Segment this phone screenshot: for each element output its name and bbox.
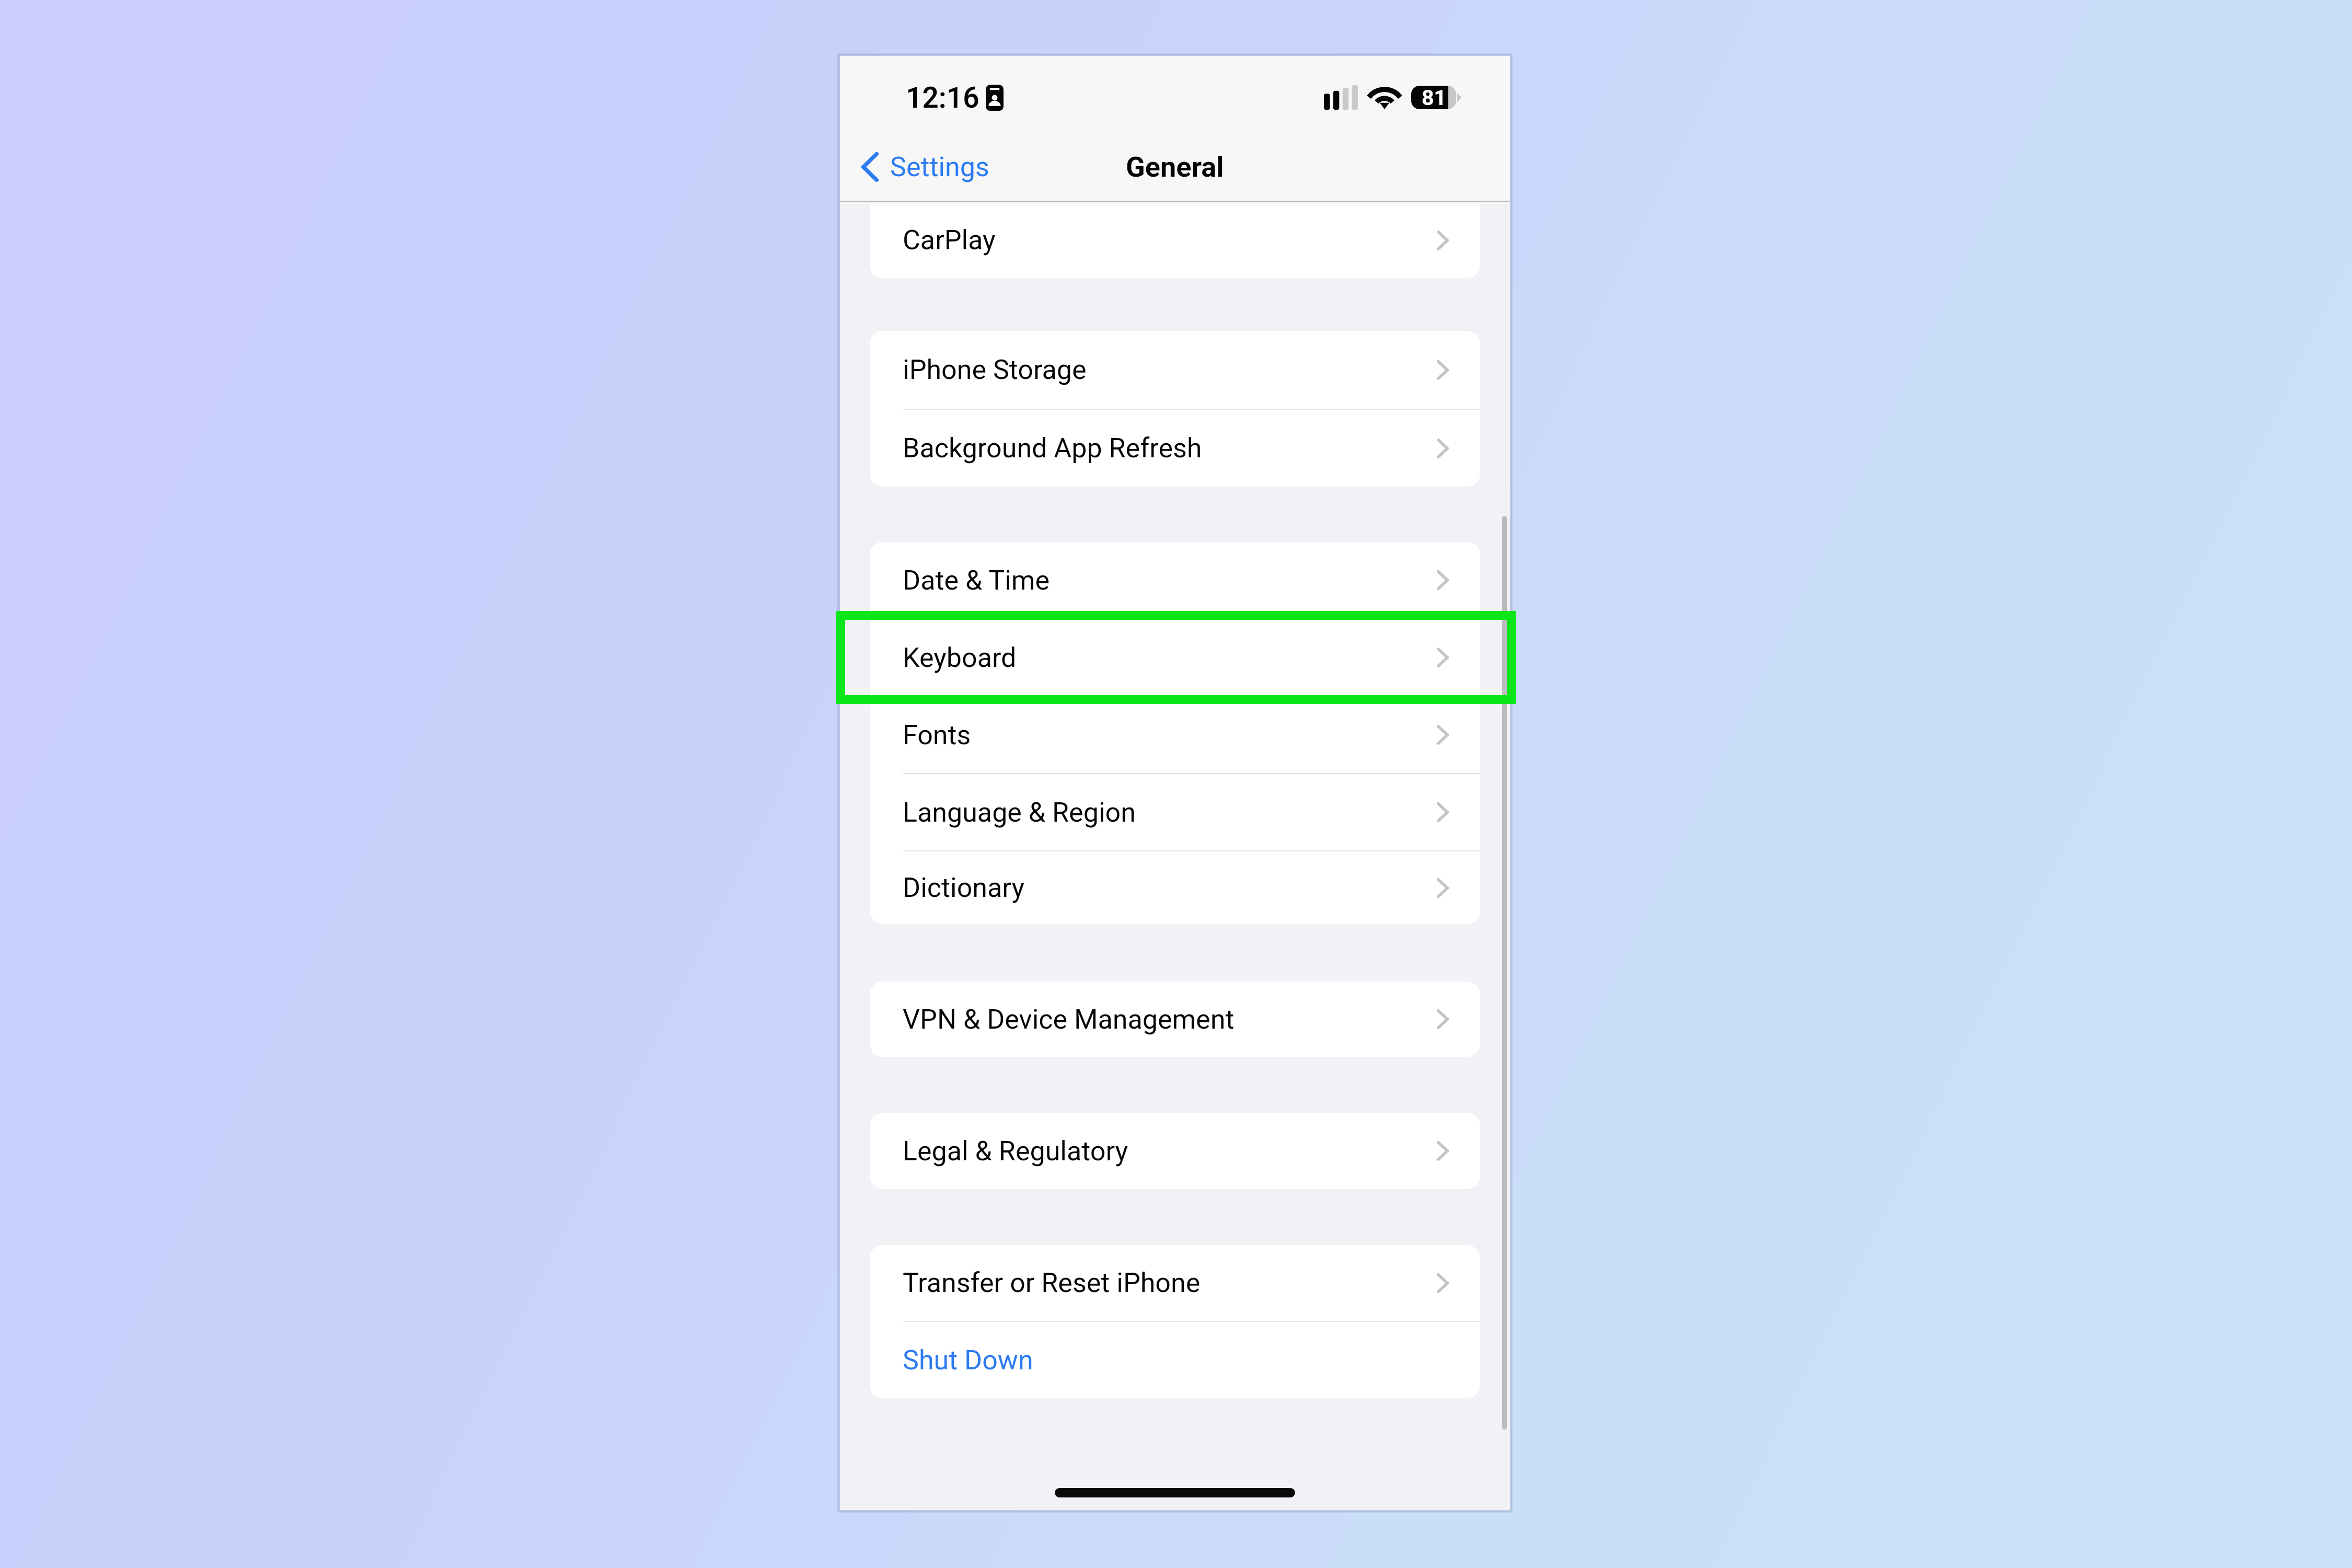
button[interactable]: CarPlay	[870, 204, 1480, 278]
button[interactable]: Language & Region	[870, 774, 1480, 850]
staticText: Language & Region	[903, 797, 1136, 828]
button[interactable]: Back to Settings	[858, 147, 993, 187]
button[interactable]: Legal & Regulatory	[870, 1113, 1480, 1189]
staticText: Settings	[890, 151, 989, 183]
staticText: 12:16	[906, 81, 979, 114]
button[interactable]: Date & Time	[870, 542, 1480, 618]
other: Keyboard row highlighted	[836, 611, 1516, 704]
button[interactable]: Fonts	[870, 697, 1480, 773]
staticText: Background App Refresh	[903, 432, 1202, 464]
button[interactable]: Transfer or Reset iPhone	[870, 1245, 1480, 1321]
button[interactable]: VPN & Device Management	[870, 982, 1480, 1057]
staticText: VPN & Device Management	[903, 1004, 1235, 1035]
staticText: Transfer or Reset iPhone	[903, 1267, 1201, 1299]
staticText: Date & Time	[903, 564, 1050, 596]
staticText: CarPlay	[903, 224, 996, 256]
button[interactable]: Background App Refresh	[870, 410, 1480, 487]
staticText: iPhone Storage	[903, 354, 1087, 386]
button[interactable]: iPhone Storage	[870, 331, 1480, 409]
staticText: General	[1126, 151, 1224, 183]
staticText: Fonts	[903, 719, 971, 751]
staticText: Legal & Regulatory	[903, 1135, 1128, 1167]
button[interactable]: Keyboard	[870, 619, 1480, 696]
staticText: Shut Down	[903, 1344, 1033, 1376]
staticText: 81	[1422, 85, 1447, 109]
button[interactable]: Dictionary	[870, 851, 1480, 924]
button[interactable]: Shut Down	[870, 1322, 1480, 1398]
staticText: Dictionary	[903, 872, 1024, 904]
staticText: Keyboard	[903, 642, 1017, 674]
